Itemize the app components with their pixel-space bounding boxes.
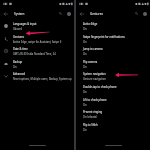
button[interactable]: Search [57,10,64,17]
staticText: On [83,103,87,106]
staticText: Jump to camera [83,47,103,51]
staticText: On [83,128,87,131]
staticText: Gboard [13,27,22,30]
staticText: On [83,40,87,43]
button[interactable]: Prevent ringing [76,107,150,120]
staticText: Reset options, Multiple users, Backup, S… [13,77,72,80]
button[interactable]: System navigation [76,69,150,82]
staticText: On [13,65,17,68]
button[interactable]: Backup [0,57,74,70]
button[interactable]: Flip camera [76,57,150,70]
staticText: Gestures [13,35,25,39]
staticText: Backup [13,60,23,64]
staticText: GMT+05:30 India Standard Time, 24 [13,52,56,55]
staticText: Advanced [13,72,26,76]
staticText: On [83,65,87,68]
button[interactable]: Swipe fingerprint for notifications [76,32,150,45]
staticText: Flip to Shhh [83,123,98,127]
button[interactable]: Lift to check phone [76,95,150,108]
button[interactable]: Double-tap to check phone [76,82,150,95]
staticText: Double-tap to check phone [83,85,117,89]
staticText: System [14,12,25,16]
staticText: On [83,90,87,93]
button[interactable]: Active Edge [76,19,150,32]
button[interactable]: Advanced [0,69,74,82]
button[interactable]: Gestures [0,32,74,45]
button[interactable]: Languages & input [0,19,74,32]
staticText: Prevent ringing [83,110,103,114]
button[interactable]: Account [141,10,148,17]
staticText: Languages & input [13,22,37,26]
staticText: System navigation [83,72,106,76]
staticText: Gesture navigation [83,77,106,80]
staticText: Flip camera [83,60,98,64]
staticText: On [83,27,87,30]
staticText: On (vibrate) [83,115,98,118]
staticText: Active Edge, swipe for Assistant, Swipe … [13,40,62,43]
button[interactable]: Date & time [0,44,74,57]
button[interactable]: Account [65,10,72,17]
staticText: Lift to check phone [83,98,107,102]
button[interactable]: Back [2,10,10,18]
staticText: Date & time [13,47,28,51]
staticText: On [83,52,87,55]
button[interactable]: Search [133,10,140,17]
button[interactable]: Flip to Shhh [76,120,150,133]
button[interactable]: Jump to camera [76,44,150,57]
staticText: Active Edge [83,22,98,26]
staticText: Gestures [90,12,103,16]
staticText: Swipe fingerprint for notifications [83,35,125,39]
button[interactable]: Back [78,10,86,18]
